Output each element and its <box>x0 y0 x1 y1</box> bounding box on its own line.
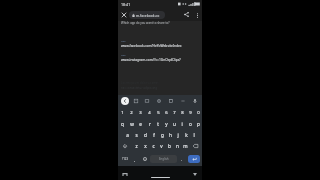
button[interactable]: z <box>132 140 141 152</box>
button[interactable]: 4 <box>145 107 154 118</box>
staticText: s <box>135 132 138 138</box>
staticText: h <box>169 132 172 138</box>
staticText: 6 <box>165 110 168 116</box>
staticText: r <box>149 121 151 127</box>
staticText: q <box>121 121 124 127</box>
staticText: www.instagram.com/?c=1GnOqdClips?&utm_co… <box>121 57 199 61</box>
button[interactable]: s <box>132 129 141 140</box>
button[interactable]: m <box>181 140 189 152</box>
staticText: , <box>134 157 135 162</box>
button[interactable]: 8 <box>178 107 186 118</box>
staticText: f <box>153 132 155 138</box>
staticText: ?123 <box>122 157 129 161</box>
staticText: e <box>139 121 142 127</box>
button[interactable]: j <box>174 129 182 140</box>
staticText: 7 <box>173 110 176 116</box>
staticText: y <box>165 121 168 127</box>
button[interactable]: 5 <box>154 107 162 118</box>
button[interactable]: q <box>118 118 127 129</box>
button[interactable]: More options <box>192 10 202 20</box>
button[interactable]: g <box>158 129 166 140</box>
staticText: Link <box>121 53 126 56</box>
button[interactable]: Link <box>118 53 202 63</box>
staticText: k <box>185 132 188 138</box>
button[interactable]: Share <box>181 9 192 20</box>
button[interactable]: Home <box>145 175 175 180</box>
staticText: p <box>197 121 200 127</box>
staticText: www.facebook.com/HeYoWebsiteIndex <box>121 43 182 47</box>
staticText: 2 <box>130 110 133 116</box>
button[interactable]: Voice input <box>191 97 199 105</box>
button[interactable]: Settings <box>155 97 163 105</box>
button[interactable]: n <box>173 140 181 152</box>
staticText: 3 <box>139 110 142 116</box>
button[interactable]: l <box>190 129 198 140</box>
button[interactable]: a <box>123 129 132 140</box>
staticText: 5 <box>157 110 160 116</box>
staticText: n <box>176 143 179 149</box>
button[interactable]: p <box>194 118 202 129</box>
button[interactable]: Enter <box>188 155 200 163</box>
button[interactable]: GIF <box>143 97 151 105</box>
button[interactable]: Stickers <box>132 97 140 105</box>
button[interactable]: Comma <box>130 155 139 163</box>
button[interactable]: e <box>136 118 145 129</box>
button[interactable]: 2 <box>127 107 136 118</box>
button[interactable]: 9 <box>186 107 194 118</box>
staticText: 18:41 <box>121 2 131 7</box>
button[interactable]: 1 <box>118 107 127 118</box>
staticText: g <box>161 132 164 138</box>
button[interactable]: More <box>179 97 187 105</box>
button[interactable]: Open toolbar <box>121 97 129 105</box>
button[interactable]: c <box>149 140 157 152</box>
staticText: Which app do you want to share to? <box>121 21 170 25</box>
button[interactable]: d <box>141 129 150 140</box>
button[interactable]: Shift <box>118 140 132 152</box>
button[interactable]: 7 <box>170 107 178 118</box>
staticText: v <box>160 143 163 149</box>
staticText: 0 <box>197 110 200 116</box>
button[interactable]: f <box>150 129 158 140</box>
button[interactable]: o <box>186 118 194 129</box>
button[interactable]: ?123 <box>120 155 130 163</box>
button[interactable]: b <box>165 140 173 152</box>
staticText: . <box>181 157 182 162</box>
button[interactable]: Backspace <box>189 140 202 152</box>
button[interactable]: h <box>166 129 174 140</box>
staticText: b <box>168 143 171 149</box>
button[interactable]: Period <box>177 155 186 163</box>
staticText: z <box>135 143 138 149</box>
button[interactable]: Hide keyboard <box>190 170 199 179</box>
button[interactable]: 3 <box>136 107 145 118</box>
button[interactable]: r <box>145 118 154 129</box>
button[interactable]: u <box>170 118 178 129</box>
staticText: w <box>130 121 134 127</box>
button[interactable]: Clipboard <box>167 97 175 105</box>
button[interactable]: 0 <box>194 107 202 118</box>
button[interactable]: v <box>157 140 165 152</box>
staticText: t <box>157 121 159 127</box>
button[interactable]: x <box>141 140 149 152</box>
button[interactable]: Recents <box>120 170 129 179</box>
button[interactable]: m.facebook.com <box>129 11 165 19</box>
button[interactable]: y <box>162 118 170 129</box>
staticText: m <box>183 143 188 149</box>
staticText: u <box>173 121 176 127</box>
staticText: d <box>144 132 147 138</box>
staticText: 1 <box>121 110 124 116</box>
button[interactable]: English <box>150 155 177 163</box>
button[interactable]: k <box>182 129 190 140</box>
staticText: English <box>159 157 169 161</box>
staticText: a <box>126 132 129 138</box>
button[interactable]: w <box>127 118 136 129</box>
button[interactable]: Link <box>118 39 202 49</box>
button[interactable]: i <box>178 118 186 129</box>
button[interactable]: 6 <box>162 107 170 118</box>
button[interactable]: t <box>154 118 162 129</box>
staticText: o <box>189 121 192 127</box>
button[interactable]: Emoji <box>139 155 150 163</box>
staticText: j <box>177 132 179 138</box>
button[interactable]: Close <box>118 9 129 20</box>
